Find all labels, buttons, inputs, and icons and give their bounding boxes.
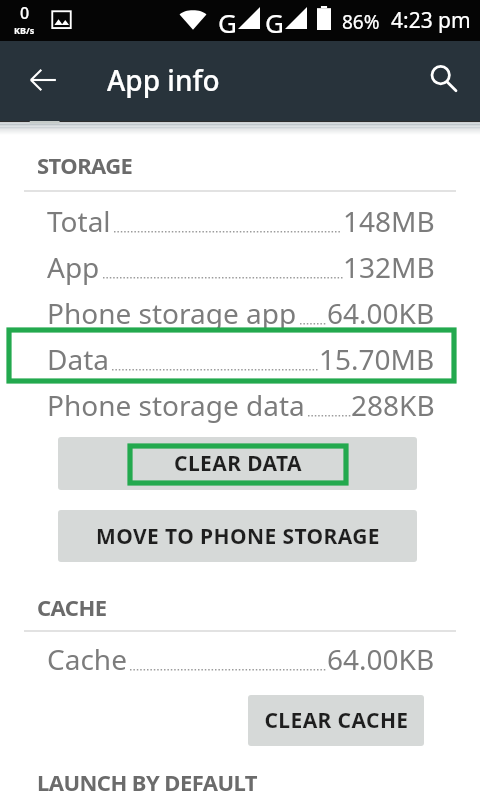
staticText: Total [47, 202, 111, 240]
staticText: Phone storage data [47, 386, 305, 424]
staticText: CLEAR DATA [174, 449, 302, 478]
staticText: App info [107, 61, 220, 99]
button[interactable]: Cache [0, 639, 480, 679]
staticText: MOVE TO PHONE STORAGE [96, 522, 380, 551]
staticText: 15.70MB [319, 340, 435, 378]
staticText: KB/s [14, 24, 35, 36]
staticText: 148MB [343, 202, 435, 240]
button[interactable]: Search [420, 57, 468, 105]
staticText: STORAGE [37, 150, 133, 180]
staticText: 64.00KB [327, 294, 435, 332]
button[interactable]: Data [0, 339, 480, 379]
staticText: 64.00KB [327, 640, 435, 678]
staticText: G [265, 5, 284, 40]
staticText: 288KB [351, 386, 435, 424]
staticText: 86% [342, 9, 380, 35]
button[interactable]: Total [0, 201, 480, 241]
button[interactable]: Navigate up [20, 57, 68, 105]
button[interactable]: Phone storage app [0, 293, 480, 333]
staticText: App [47, 248, 100, 286]
staticText: Phone storage app [47, 294, 297, 332]
staticText: G [218, 5, 237, 40]
staticText: 0 [20, 2, 30, 24]
staticText: CLEAR CACHE [264, 706, 409, 735]
button[interactable]: MOVE TO PHONE STORAGE [58, 510, 417, 562]
button[interactable]: CLEAR DATA [58, 437, 417, 490]
staticText: Data [47, 340, 109, 378]
button[interactable]: CLEAR CACHE [248, 695, 424, 746]
button[interactable]: Phone storage data [0, 385, 480, 425]
staticText: Cache [47, 640, 127, 678]
button[interactable]: App [0, 247, 480, 287]
staticText: 132MB [343, 248, 435, 286]
staticText: LAUNCH BY DEFAULT [37, 767, 257, 797]
staticText: CACHE [37, 592, 107, 622]
staticText: 4:23 pm [391, 6, 471, 35]
